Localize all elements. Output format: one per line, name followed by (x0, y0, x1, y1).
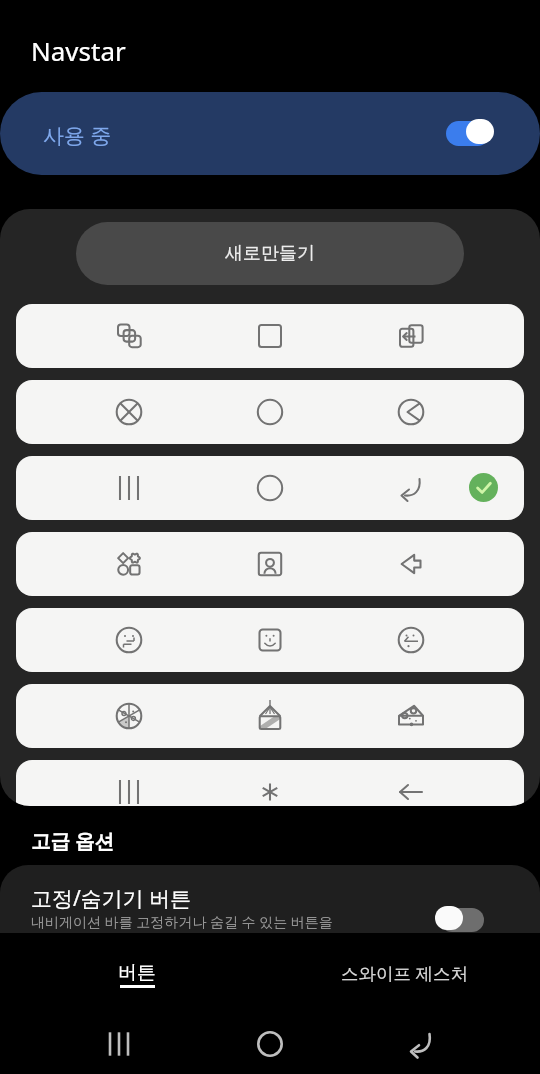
staticText: Navstar (31, 33, 126, 68)
button[interactable]: 새로만들기 (76, 222, 464, 285)
button[interactable] (16, 456, 524, 520)
button[interactable] (16, 684, 524, 748)
staticText: 버튼 (118, 961, 156, 985)
button[interactable] (16, 380, 524, 444)
button[interactable] (16, 532, 524, 596)
button[interactable] (16, 608, 524, 672)
staticText: 새로만들기 (225, 242, 315, 265)
staticText: 고급 옵션 (31, 827, 115, 854)
button[interactable] (446, 121, 490, 146)
button[interactable] (16, 760, 524, 806)
button[interactable]: 버튼 (2, 940, 272, 1004)
button[interactable]: 스와이프 제스처 (270, 940, 540, 1004)
button[interactable]: Recents (89, 1014, 149, 1074)
staticText: 고정/숨기기 버튼 (31, 884, 192, 913)
button[interactable] (16, 304, 524, 368)
button[interactable]: 고정/숨기기 버튼 (0, 865, 540, 933)
staticText: 스와이프 제스처 (341, 961, 469, 985)
staticText: 사용 중 (43, 121, 112, 150)
staticText: 내비게이션 바를 고정하거나 숨길 수 있는 버튼을 (31, 912, 333, 931)
button[interactable]: Home (240, 1014, 300, 1074)
button[interactable]: Back (391, 1014, 451, 1074)
button[interactable]: 사용 중 (0, 92, 540, 175)
button[interactable] (440, 908, 484, 932)
